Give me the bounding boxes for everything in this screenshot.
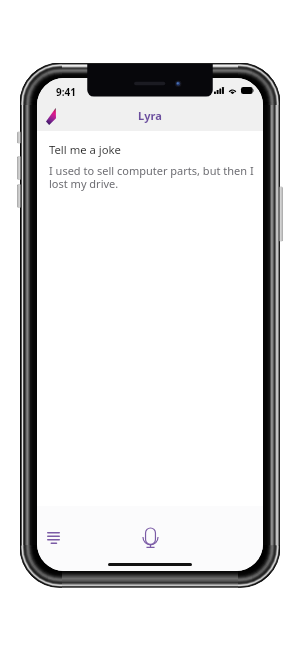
staticText: Tell me a joke — [49, 142, 121, 157]
staticText: 9:41 — [56, 85, 76, 99]
staticText: Lyra — [138, 108, 162, 123]
staticText: I used to sell computer parts, but then … — [49, 163, 255, 192]
button[interactable]: Menu — [40, 526, 66, 550]
button[interactable]: Microphone — [135, 525, 165, 551]
